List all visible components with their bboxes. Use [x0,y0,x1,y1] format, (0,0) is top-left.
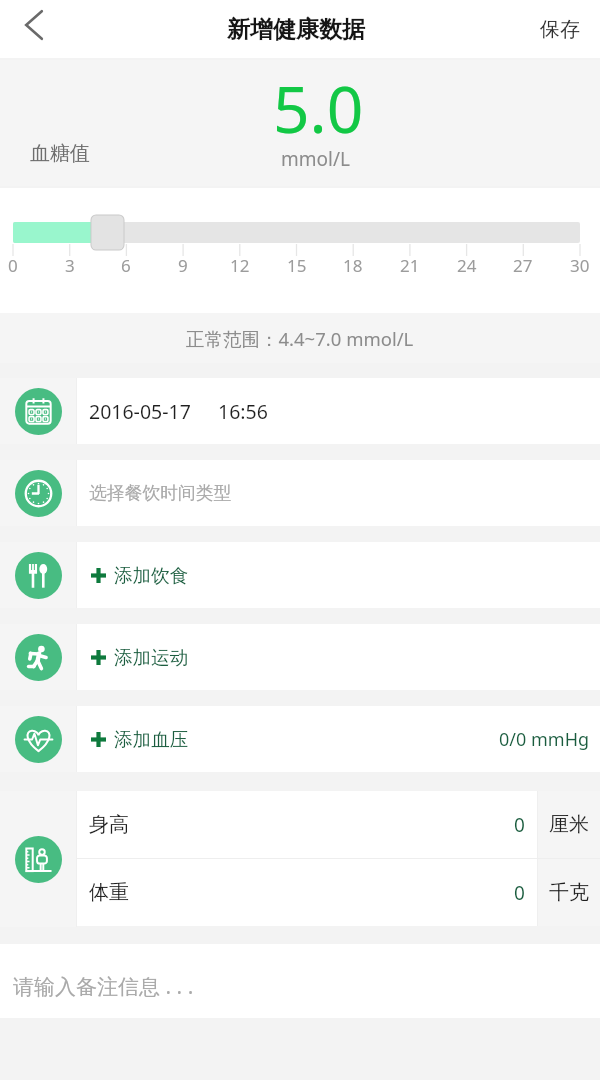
staticText: 选择餐饮时间类型 [89,482,232,504]
staticText: 30 [570,254,590,277]
button[interactable]: Add exercise [0,624,600,690]
staticText: 0 [514,880,525,906]
button[interactable]: Add food [0,542,600,608]
button[interactable]: 请输入备注信息 . . . [0,944,600,1018]
button[interactable]: 保存 [524,0,600,58]
staticText: 千克 [549,880,589,905]
staticText: 添加饮食 [114,564,189,587]
staticText: 15 [287,254,307,277]
staticText: mmol/L [281,146,350,172]
button[interactable]: Back [0,0,68,58]
button[interactable]: Add blood pressure [0,706,600,772]
staticText: 12 [230,254,250,277]
staticText: 厘米 [549,812,589,837]
button[interactable]: 体重 [77,859,600,926]
staticText: 请输入备注信息 . . . [13,972,194,1001]
button[interactable]: Meal time type [0,460,600,526]
staticText: 27 [513,254,533,277]
staticText: 2016-05-17 [89,398,191,425]
staticText: 添加血压 [114,728,189,751]
staticText: 0/0 mmHg [499,727,590,752]
staticText: 3 [65,254,75,277]
staticText: 保存 [540,17,580,42]
staticText: 正常范围：4.4~7.0 mmol/L [186,326,414,351]
staticText: 血糖值 [30,141,90,166]
staticText: 6 [121,254,131,277]
staticText: 24 [457,254,477,277]
staticText: 体重 [89,880,129,905]
staticText: 9 [178,254,188,277]
staticText: 18 [343,254,363,277]
staticText: 0 [514,812,525,838]
staticText: 新增健康数据 [227,15,365,44]
staticText: 身高 [89,812,129,837]
staticText: 21 [400,254,420,277]
staticText: 0 [8,254,18,277]
staticText: 5.0 [273,65,364,152]
button[interactable]: Date [0,378,600,444]
button[interactable]: 身高 [77,791,600,858]
staticText: 添加运动 [114,646,189,669]
staticText: 16:56 [218,398,268,425]
